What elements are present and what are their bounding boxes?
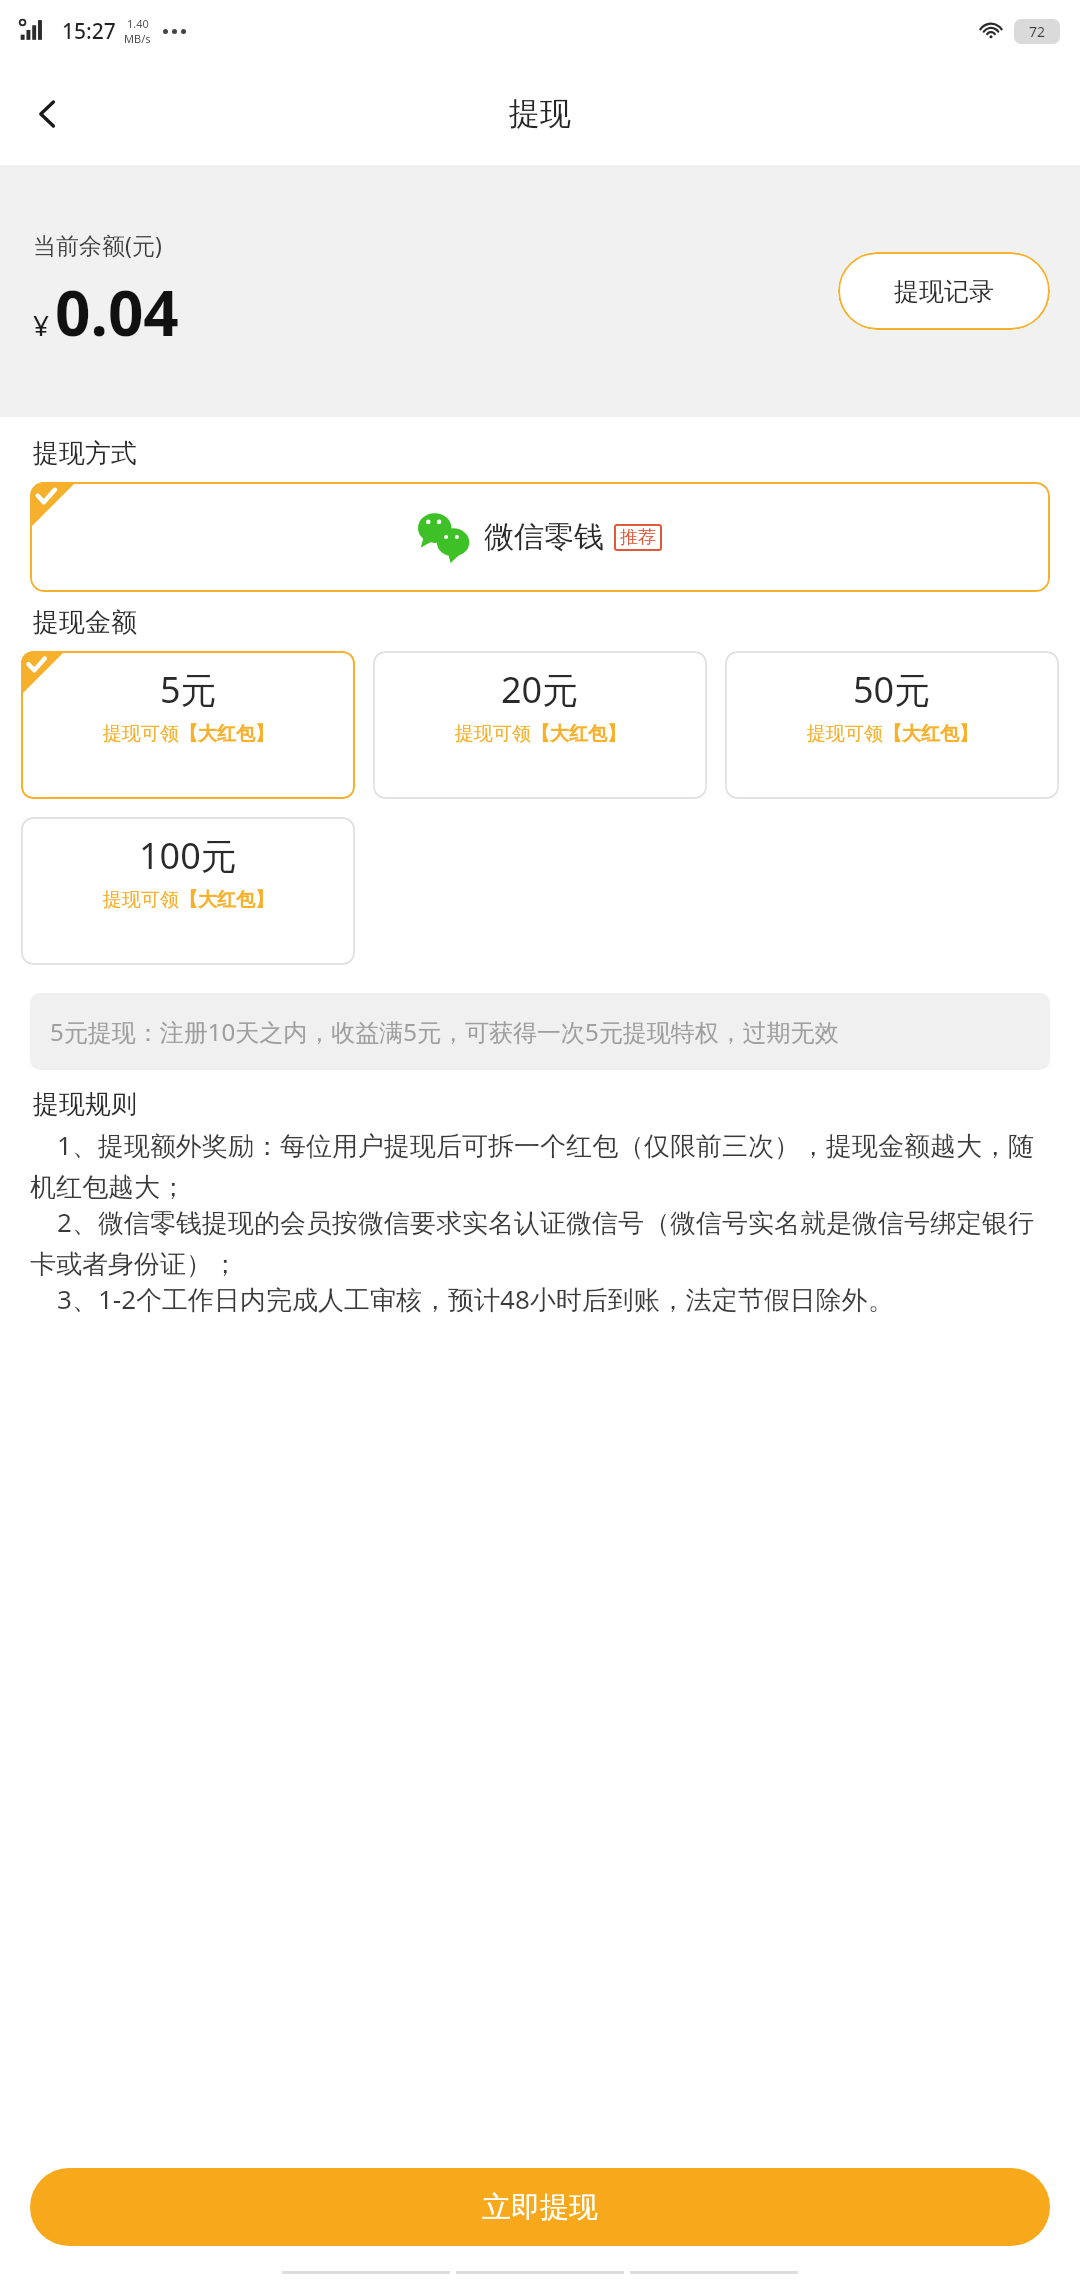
staticText: MB/s	[124, 31, 151, 46]
staticText: 当前余额(元)	[33, 229, 162, 260]
button[interactable]: Back	[18, 84, 78, 144]
staticText: 【大红包】	[179, 722, 274, 746]
button[interactable]: 立即提现	[30, 2168, 1050, 2246]
staticText: 1.40	[127, 16, 149, 31]
staticText: 50元	[853, 665, 931, 714]
staticText: 72	[1029, 22, 1046, 41]
staticText: 微信零钱	[484, 518, 604, 556]
button[interactable]: 50元	[725, 651, 1059, 799]
staticText: 【大红包】	[883, 722, 978, 746]
staticText: 提现方式	[33, 437, 137, 470]
staticText: 3、1-2个工作日内完成人工审核，预计48小时后到账，法定节假日除外。	[30, 1281, 894, 1317]
button[interactable]: 5元	[21, 651, 355, 799]
button[interactable]: 微信零钱	[30, 482, 1050, 592]
staticText: 【大红包】	[179, 888, 274, 912]
staticText: 20元	[501, 665, 579, 714]
staticText: 5元	[160, 665, 217, 714]
button[interactable]: 20元	[373, 651, 707, 799]
staticText: ¥	[33, 306, 50, 344]
staticText: 100元	[139, 831, 237, 880]
staticText: 【大红包】	[531, 722, 626, 746]
staticText: 提现规则	[33, 1088, 137, 1121]
button[interactable]: 100元	[21, 817, 355, 965]
button[interactable]: 提现记录	[838, 252, 1050, 330]
staticText: 提现记录	[894, 276, 994, 307]
staticText: 推荐	[620, 526, 656, 549]
staticText: 立即提现	[482, 2189, 598, 2226]
staticText: 提现可领	[807, 722, 883, 746]
staticText: 15:27	[62, 17, 116, 46]
staticText: 提现金额	[33, 606, 137, 639]
staticText: 0.04	[55, 270, 179, 354]
staticText: 提现	[509, 94, 571, 133]
staticText: 提现可领	[455, 722, 531, 746]
staticText: 提现可领	[103, 888, 179, 912]
staticText: 提现可领	[103, 722, 179, 746]
staticText: 5元提现：注册10天之内，收益满5元，可获得一次5元提现特权，过期无效	[50, 1015, 839, 1048]
staticText: 2、微信零钱提现的会员按微信要求实名认证微信号（微信号实名就是微信号绑定银行卡或…	[30, 1204, 1050, 1281]
staticText: 1、提现额外奖励：每位用户提现后可拆一个红包（仅限前三次），提现金额越大，随机红…	[30, 1127, 1050, 1204]
